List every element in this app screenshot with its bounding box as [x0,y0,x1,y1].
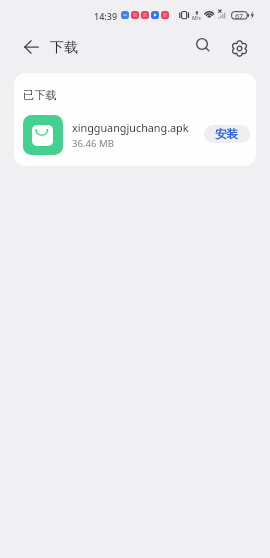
staticText: 已下载 [23,88,57,102]
staticText: 14:39 [94,10,118,22]
staticText: 安装 [215,127,238,141]
button[interactable]: Search [191,33,217,59]
staticText: 67 [235,12,244,22]
button[interactable]: Back [18,34,44,60]
button[interactable]: Settings [226,35,252,61]
staticText: xingguangjuchang.apk [72,120,189,135]
staticText: 下载 [50,39,78,57]
staticText: 36.46 MB [72,137,114,150]
button[interactable]: 安装 [204,125,250,143]
staticText: M/s [192,15,201,22]
